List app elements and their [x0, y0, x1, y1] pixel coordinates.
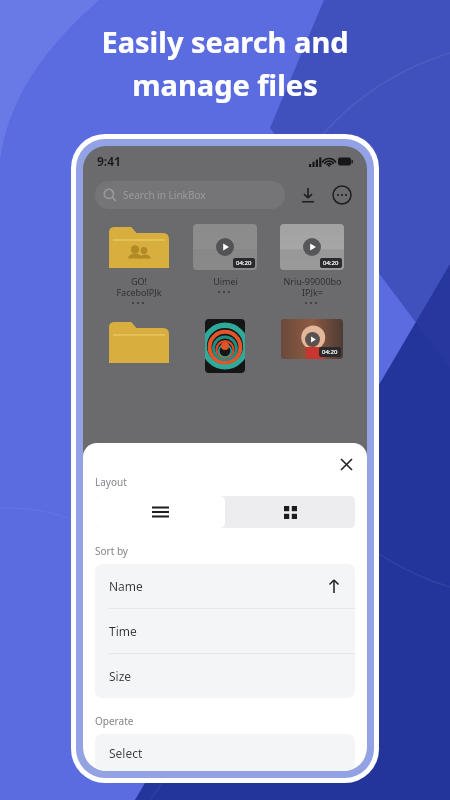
button[interactable]: List layout [95, 496, 225, 528]
staticText: Layout [95, 475, 127, 489]
button[interactable]: More options [329, 182, 355, 208]
staticText: Uimei [213, 275, 238, 287]
staticText: Operate [95, 714, 134, 728]
staticText: Sort by [95, 544, 128, 558]
button[interactable]: 04:20 [271, 224, 353, 305]
button[interactable]: GO! FacebolPJk [98, 224, 180, 305]
button[interactable]: Search in LinkBox [95, 181, 285, 209]
staticText: Search in LinkBox [123, 188, 206, 202]
staticText: Size [109, 668, 132, 684]
button[interactable]: Select [95, 734, 355, 771]
button[interactable]: Download [295, 182, 321, 208]
staticText: GO! FacebolPJk [116, 275, 162, 298]
staticText: Select [109, 745, 143, 761]
staticText: 04:20 [322, 348, 338, 356]
staticText: Nriu-99000bo IPJk= [283, 275, 342, 298]
staticText: Easily search and [101, 22, 349, 61]
button[interactable]: Grid layout [225, 496, 355, 528]
button[interactable]: Name [95, 564, 355, 608]
staticText: 04:20 [323, 259, 339, 267]
staticText: Name [109, 578, 143, 594]
staticText: 9:41 [97, 153, 121, 169]
button[interactable]: Time [95, 609, 355, 653]
staticText: manage files [132, 65, 318, 104]
button[interactable]: 04:20 [184, 224, 266, 294]
staticText: Time [109, 623, 137, 639]
button[interactable]: Close [335, 453, 357, 475]
button[interactable]: Size [95, 654, 355, 698]
staticText: 04:20 [236, 259, 252, 267]
